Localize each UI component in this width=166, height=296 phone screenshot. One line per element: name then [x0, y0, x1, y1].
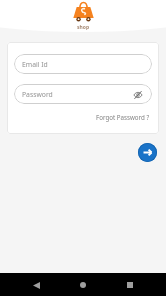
- button[interactable]: Back: [25, 274, 47, 296]
- button[interactable]: Password: [14, 84, 152, 104]
- button[interactable]: Submit: [138, 143, 157, 162]
- button[interactable]: Email Id: [14, 54, 152, 74]
- staticText: Password: [22, 90, 53, 99]
- staticText: Email Id: [22, 60, 48, 69]
- button[interactable]: Home: [72, 274, 94, 296]
- button[interactable]: Recent apps: [119, 274, 141, 296]
- staticText: Forgot Password ?: [96, 113, 150, 121]
- button[interactable]: Forgot Password ?: [14, 112, 152, 122]
- staticText: shop: [77, 24, 90, 31]
- button[interactable]: Show password: [132, 89, 143, 100]
